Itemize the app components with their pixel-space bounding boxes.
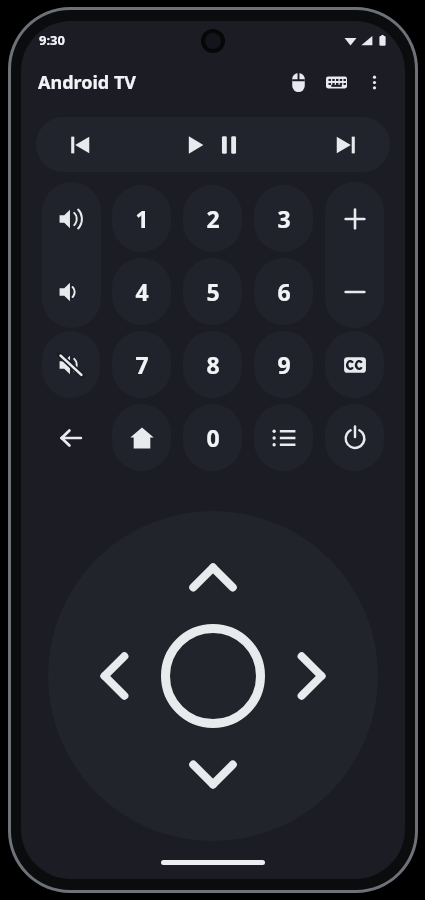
staticText: 2 [206,203,220,234]
button[interactable]: Up [170,535,256,621]
button[interactable]: More options [355,63,393,101]
staticText: 0 [206,422,220,453]
button[interactable]: Pause [212,117,301,172]
button[interactable]: Right [268,633,354,719]
staticText: 1 [135,203,149,234]
staticText: 8 [206,349,220,380]
staticText: 3 [277,203,291,234]
button[interactable]: Play [124,117,212,172]
button[interactable]: 9 [254,331,313,398]
button[interactable]: 1 [112,185,171,252]
staticText: 4 [135,276,149,307]
button[interactable]: Power [325,404,384,471]
button[interactable]: Touchpad [279,63,317,101]
button[interactable]: 0 [183,404,242,471]
button[interactable]: Volume down [42,258,100,325]
button[interactable]: Menu [254,404,313,471]
button[interactable]: Home [112,404,171,471]
button[interactable]: 8 [183,331,242,398]
button[interactable]: Next [301,117,390,172]
button[interactable]: Mute [42,331,100,398]
button[interactable]: Back [42,404,100,471]
staticText: 5 [206,276,220,307]
button[interactable]: Select [159,622,267,730]
button[interactable]: Channel down [325,258,384,325]
button[interactable]: Channel up [325,185,384,252]
button[interactable]: Left [72,633,158,719]
button[interactable]: 2 [183,185,242,252]
staticText: Android TV [38,70,136,95]
button[interactable]: Previous [36,117,124,172]
staticText: 6 [277,276,291,307]
staticText: 7 [135,349,149,380]
button[interactable]: 4 [112,258,171,325]
button[interactable]: 7 [112,331,171,398]
staticText: 9 [277,349,291,380]
button[interactable]: 3 [254,185,313,252]
button[interactable]: Keyboard [317,63,355,101]
button[interactable]: Closed captions [325,331,384,398]
button[interactable]: Volume up [42,185,100,252]
button[interactable]: 6 [254,258,313,325]
button[interactable]: 5 [183,258,242,325]
button[interactable]: Down [170,731,256,817]
staticText: 9:30 [39,31,65,49]
